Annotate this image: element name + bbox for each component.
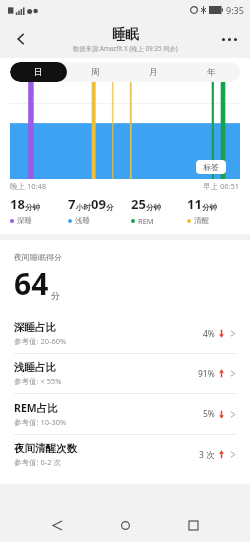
staticText: 7	[68, 195, 76, 213]
staticText: 夜间睡眠得分	[14, 252, 62, 262]
staticText: 参考值: 0-2 次	[14, 457, 61, 467]
staticText: 25	[131, 195, 146, 213]
staticText: REM	[138, 216, 154, 226]
button[interactable]: Back	[6, 24, 36, 54]
staticText: 浅睡	[75, 216, 90, 225]
button[interactable]: 夜间清醒次数	[0, 435, 250, 474]
staticText: 标签	[203, 162, 219, 172]
staticText: 数据来源:Amazfit X (晚上 09:35 同步)	[73, 44, 178, 53]
button[interactable]: More options	[214, 24, 244, 54]
button[interactable]: 标签	[203, 162, 219, 172]
staticText: 早上 06:51	[203, 181, 240, 191]
staticText: 参考值: 20-60%	[14, 336, 67, 346]
staticText: 分钟	[25, 203, 40, 212]
button[interactable]: 年	[182, 62, 240, 82]
button[interactable]: Home	[114, 514, 136, 536]
staticText: 参考值: < 55%	[14, 376, 62, 386]
staticText: 5%	[203, 408, 215, 420]
button[interactable]: Back	[46, 514, 68, 536]
staticText: 9:35	[226, 4, 244, 16]
button[interactable]: 11	[187, 195, 240, 225]
staticText: 日	[34, 67, 43, 78]
staticText: 浅睡占比	[14, 361, 56, 374]
button[interactable]: Recents	[182, 514, 204, 536]
button[interactable]: 日	[10, 62, 67, 82]
button[interactable]: 月	[124, 62, 182, 82]
button[interactable]: 深睡占比	[0, 314, 250, 353]
staticText: 18	[10, 195, 25, 213]
button[interactable]: 18	[10, 195, 68, 225]
staticText: 睡眠	[112, 26, 139, 43]
staticText: REM占比	[14, 401, 58, 415]
staticText: 11	[187, 195, 202, 213]
staticText: 月	[149, 67, 158, 78]
staticText: 4%	[203, 328, 215, 340]
staticText: 09	[91, 195, 106, 213]
button[interactable]: 周	[67, 62, 124, 82]
staticText: 小时	[76, 203, 91, 212]
staticText: 分钟	[202, 203, 217, 212]
staticText: 夜间清醒次数	[14, 442, 77, 455]
staticText: 分钟	[146, 203, 161, 212]
button[interactable]: REM占比	[0, 394, 250, 434]
staticText: 清醒	[194, 216, 209, 225]
staticText: 分	[106, 203, 114, 212]
staticText: 年	[207, 67, 216, 78]
staticText: 周	[91, 67, 100, 78]
staticText: 晚上 10:48	[10, 181, 47, 191]
button[interactable]: 25	[131, 195, 187, 226]
staticText: 深睡	[17, 216, 32, 225]
button[interactable]: 浅睡占比	[0, 354, 250, 393]
staticText: 3 次	[199, 449, 215, 461]
staticText: 91%	[198, 368, 215, 380]
staticText: 深睡占比	[14, 321, 56, 334]
button[interactable]: 7	[68, 195, 131, 225]
staticText: 64	[14, 263, 49, 304]
staticText: 分	[51, 290, 60, 301]
staticText: 参考值: 10-30%	[14, 417, 67, 427]
